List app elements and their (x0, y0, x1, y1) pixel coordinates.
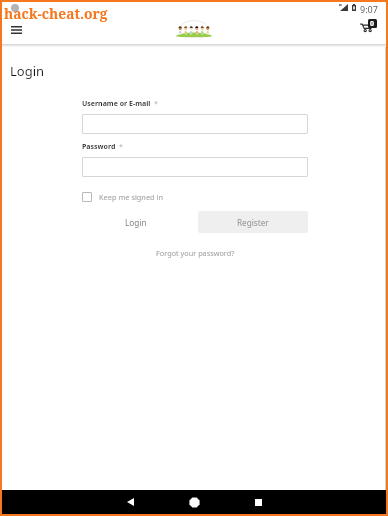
staticText: * (119, 142, 123, 152)
button[interactable]: Back (98, 490, 162, 514)
staticText: Keep me signed in (99, 192, 164, 202)
button[interactable]: Register (198, 211, 308, 233)
button[interactable]: Home (162, 490, 226, 514)
button[interactable]: Forgot your password? (156, 248, 235, 258)
button[interactable] (82, 114, 308, 134)
button[interactable]: Recent apps (226, 490, 290, 514)
button[interactable]: Shopping cart, 0 items (356, 14, 380, 36)
button[interactable]: Keep me signed in (82, 192, 164, 202)
staticText: Login (125, 217, 147, 228)
button[interactable]: Login (82, 211, 190, 233)
button[interactable]: Open navigation menu (5, 19, 27, 41)
staticText: Login (10, 62, 45, 80)
staticText: Username or E-mail (82, 99, 151, 109)
staticText: * (154, 99, 158, 109)
staticText: Password (82, 142, 116, 152)
staticText: 0 (370, 19, 375, 28)
staticText: hack-cheat.org (4, 4, 108, 23)
button[interactable] (82, 157, 308, 177)
staticText: Register (237, 217, 269, 228)
staticText: 9:07 (360, 3, 378, 15)
